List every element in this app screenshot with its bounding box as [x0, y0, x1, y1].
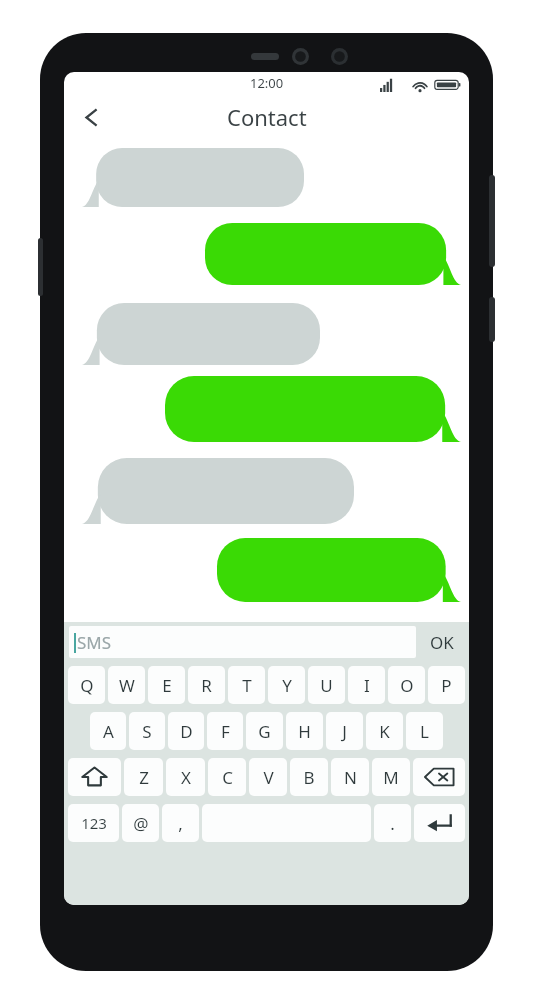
- staticText: Q: [80, 674, 94, 697]
- button[interactable]: K: [366, 712, 403, 750]
- button[interactable]: V: [249, 758, 287, 796]
- button[interactable]: ,: [162, 804, 199, 842]
- button[interactable]: Shift: [68, 758, 121, 796]
- button[interactable]: U: [308, 666, 345, 704]
- button[interactable]: C: [208, 758, 246, 796]
- staticText: M: [383, 766, 399, 789]
- staticText: .: [390, 812, 395, 835]
- button[interactable]: R: [188, 666, 225, 704]
- staticText: B: [303, 766, 315, 789]
- button[interactable]: [82, 148, 304, 207]
- staticText: R: [201, 674, 212, 697]
- button[interactable]: O: [388, 666, 425, 704]
- button[interactable]: P: [428, 666, 465, 704]
- button[interactable]: F: [207, 712, 243, 750]
- staticText: 123: [81, 813, 107, 833]
- button[interactable]: 123: [68, 804, 119, 842]
- button[interactable]: Enter: [414, 804, 465, 842]
- staticText: OK: [430, 631, 454, 654]
- button[interactable]: N: [331, 758, 369, 796]
- staticText: C: [222, 766, 233, 789]
- staticText: J: [342, 720, 347, 743]
- staticText: Y: [282, 674, 292, 697]
- button[interactable]: X: [166, 758, 205, 796]
- button[interactable]: T: [228, 666, 265, 704]
- staticText: L: [420, 720, 429, 743]
- button[interactable]: [82, 303, 320, 365]
- staticText: P: [441, 674, 452, 697]
- staticText: @: [133, 812, 149, 835]
- button[interactable]: H: [286, 712, 323, 750]
- staticText: 12:00: [250, 74, 284, 92]
- button[interactable]: Y: [268, 666, 305, 704]
- staticText: S: [142, 720, 152, 743]
- button[interactable]: Backspace: [413, 758, 465, 796]
- staticText: SMS: [77, 631, 112, 654]
- staticText: K: [379, 720, 390, 743]
- staticText: H: [298, 720, 311, 743]
- staticText: U: [320, 674, 333, 697]
- staticText: D: [180, 720, 193, 743]
- button[interactable]: G: [246, 712, 283, 750]
- button[interactable]: SMS: [69, 626, 416, 658]
- button[interactable]: Z: [124, 758, 163, 796]
- staticText: ,: [178, 812, 183, 835]
- button[interactable]: M: [372, 758, 410, 796]
- button[interactable]: W: [108, 666, 145, 704]
- button[interactable]: S: [129, 712, 165, 750]
- staticText: F: [221, 720, 230, 743]
- button[interactable]: D: [168, 712, 204, 750]
- button[interactable]: [217, 538, 461, 602]
- button[interactable]: Back: [64, 96, 118, 138]
- button[interactable]: B: [290, 758, 328, 796]
- staticText: V: [263, 766, 274, 789]
- button[interactable]: L: [406, 712, 443, 750]
- button[interactable]: [82, 458, 354, 524]
- button[interactable]: A: [90, 712, 126, 750]
- staticText: Z: [139, 766, 149, 789]
- button[interactable]: @: [122, 804, 159, 842]
- staticText: X: [181, 766, 191, 789]
- staticText: Contact: [227, 102, 307, 132]
- button[interactable]: [165, 376, 461, 442]
- button[interactable]: [205, 223, 461, 285]
- button[interactable]: I: [348, 666, 385, 704]
- button[interactable]: OK: [420, 626, 464, 658]
- staticText: G: [258, 720, 271, 743]
- button[interactable]: E: [148, 666, 185, 704]
- button[interactable]: J: [326, 712, 363, 750]
- button[interactable]: Q: [68, 666, 105, 704]
- staticText: I: [364, 674, 370, 697]
- staticText: T: [242, 674, 252, 697]
- button[interactable]: .: [374, 804, 411, 842]
- staticText: W: [119, 674, 135, 697]
- staticText: A: [103, 720, 114, 743]
- staticText: O: [400, 674, 414, 697]
- staticText: E: [162, 674, 172, 697]
- staticText: N: [344, 766, 357, 789]
